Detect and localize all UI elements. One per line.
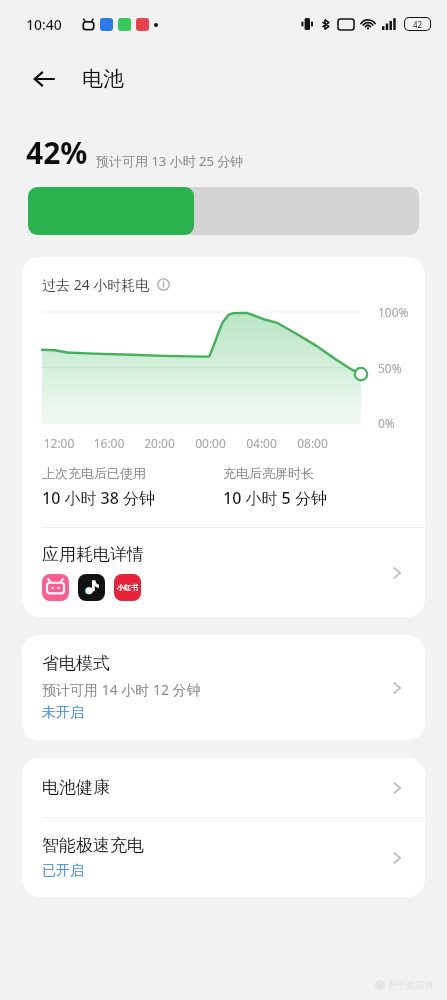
staticText: 上次充电后已使用 — [42, 465, 146, 481]
button[interactable]: Back — [22, 57, 66, 101]
staticText: 过去 24 小时耗电 — [42, 275, 150, 294]
staticText: 开个资源网 — [388, 979, 433, 990]
staticText: 0% — [378, 415, 395, 431]
staticText: 00:00 — [185, 435, 236, 451]
button[interactable]: 应用耗电详情 — [22, 528, 425, 617]
staticText: 10 小时 38 分钟 — [42, 487, 156, 509]
staticText: 100% — [378, 304, 409, 320]
button[interactable]: 省电模式 — [22, 635, 425, 740]
staticText: 充电后亮屏时长 — [223, 465, 314, 481]
staticText: 未开启 — [42, 704, 84, 722]
staticText: 16:00 — [84, 435, 134, 451]
staticText: 小红书 — [117, 583, 138, 592]
staticText: 10 小时 5 分钟 — [223, 487, 327, 509]
button[interactable]: 智能极速充电 — [22, 818, 425, 897]
staticText: 智能极速充电 — [42, 835, 144, 856]
staticText: 42 — [413, 19, 423, 30]
staticText: 省电模式 — [42, 653, 110, 674]
staticText: 应用耗电详情 — [42, 544, 144, 565]
staticText: 电池健康 — [42, 777, 387, 798]
staticText: 12:00 — [34, 435, 84, 451]
staticText: 50% — [378, 360, 402, 376]
staticText: 04:00 — [236, 435, 287, 451]
staticText: 预计可用 14 小时 12 分钟 — [42, 680, 201, 699]
button[interactable]: 电池健康 — [22, 758, 425, 817]
staticText: 已开启 — [42, 862, 84, 880]
staticText: 10:40 — [26, 15, 62, 34]
staticText: 20:00 — [134, 435, 185, 451]
staticText: 08:00 — [287, 435, 338, 451]
staticText: 预计可用 13 小时 25 分钟 — [96, 152, 244, 170]
staticText: 42% — [26, 132, 88, 173]
staticText: 电池 — [82, 66, 124, 92]
